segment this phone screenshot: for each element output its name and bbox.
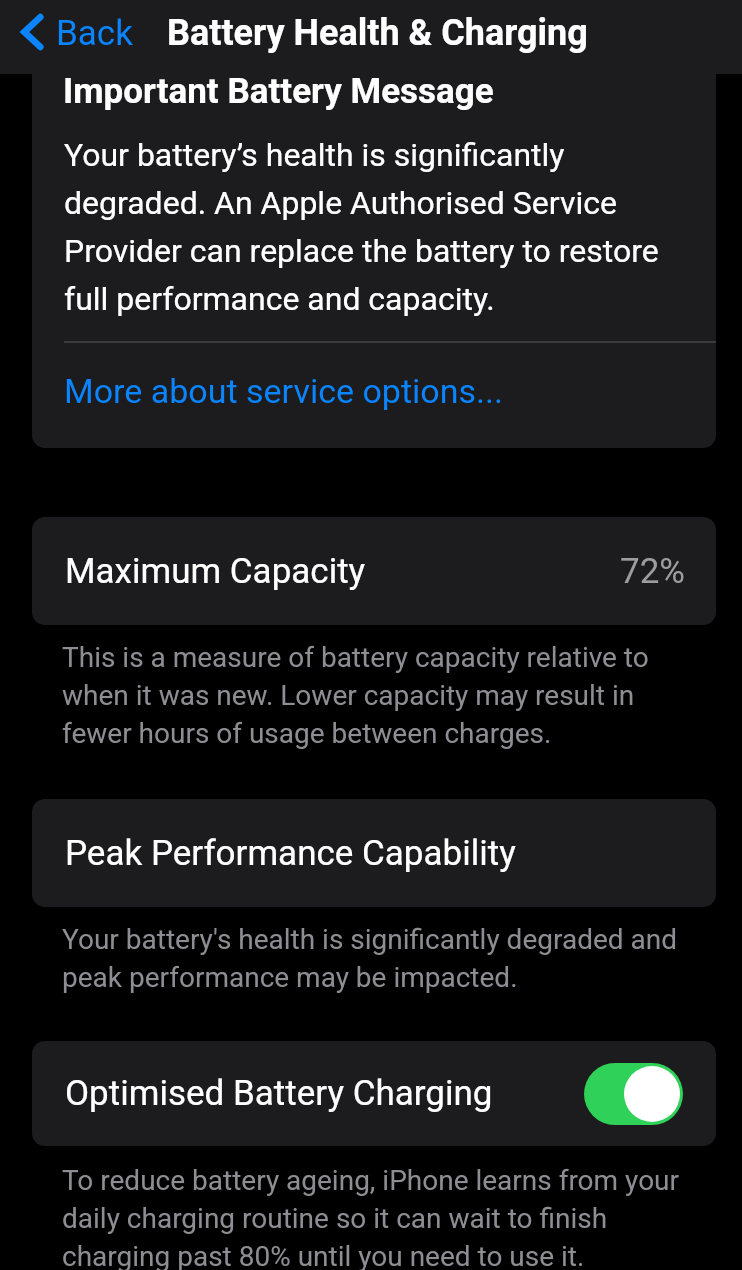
staticText: More about service options... [64,373,503,411]
button[interactable]: Peak Performance Capability [32,799,716,907]
staticText: This is a measure of battery capacity re… [62,637,694,751]
button[interactable]: Maximum Capacity [32,517,716,625]
staticText: Back [56,13,133,54]
button[interactable]: More about service options... [32,356,716,448]
staticText: 72% [620,551,685,592]
staticText: Maximum Capacity [65,551,366,592]
staticText: Battery Health & Charging [167,12,588,54]
staticText: To reduce battery ageing, iPhone learns … [62,1160,694,1270]
staticText: Optimised Battery Charging [65,1073,493,1114]
button[interactable]: Back [8,0,133,69]
staticText: Your battery’s health is significantly d… [64,128,684,320]
staticText: Your battery's health is significantly d… [62,919,694,995]
button[interactable]: Optimised Battery Charging, on [584,1063,683,1125]
staticText: Important Battery Message [63,70,494,112]
staticText: Peak Performance Capability [65,833,516,874]
